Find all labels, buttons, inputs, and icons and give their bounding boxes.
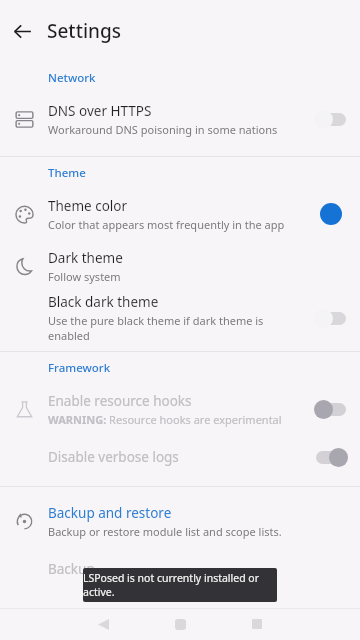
button[interactable]: Theme color: [0, 188, 360, 240]
staticText: Theme: [48, 165, 86, 181]
button[interactable]: Dark theme: [0, 240, 360, 292]
staticText: Settings: [47, 18, 121, 44]
button[interactable]: Backup: [0, 547, 360, 591]
button[interactable]: Backup and restore: [0, 495, 360, 547]
button[interactable]: Back: [86, 608, 120, 640]
staticText: DNS over HTTPS: [48, 102, 152, 120]
button[interactable]: DNS over HTTPS: [0, 93, 360, 145]
staticText: Disable verbose logs: [48, 448, 179, 466]
staticText: Backup and restore: [48, 504, 172, 522]
button[interactable]: Home: [163, 608, 197, 640]
button[interactable]: Disable verbose logs: [0, 435, 360, 479]
staticText: Use the pure black theme if dark theme i…: [48, 313, 302, 343]
button[interactable]: Enable resource hooks: [0, 383, 360, 435]
button[interactable]: Navigate up: [4, 13, 40, 49]
staticText: LSPosed is not currently installed or ac…: [83, 571, 277, 599]
staticText: Theme color: [48, 197, 128, 215]
staticText: Enable resource hooks: [48, 392, 192, 410]
staticText: Color that appears most frequently in th…: [48, 217, 285, 232]
button[interactable]: Restore: [0, 591, 360, 635]
staticText: Network: [48, 70, 96, 86]
staticText: Follow system: [48, 269, 121, 284]
staticText: Framework: [48, 360, 111, 376]
staticText: Backup or restore module list and scope …: [48, 524, 282, 539]
button[interactable]: Recent apps: [240, 608, 274, 640]
staticText: WARNING: Resource hooks are experimental: [48, 412, 282, 427]
staticText: Black dark theme: [48, 293, 159, 311]
staticText: Backup: [48, 560, 95, 578]
button[interactable]: Black dark theme: [0, 292, 360, 344]
staticText: Workaround DNS poisoning in some nations: [48, 122, 278, 137]
staticText: Dark theme: [48, 249, 123, 267]
